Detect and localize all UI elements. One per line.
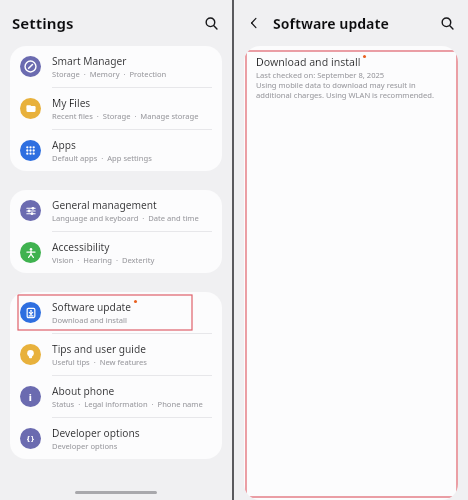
button[interactable]: Apps — [10, 130, 222, 171]
button[interactable]: Search — [434, 10, 460, 36]
button[interactable]: Search — [198, 10, 224, 36]
button[interactable]: My Files — [10, 88, 222, 129]
staticText: Recent files · Storage · Manage storage — [52, 111, 199, 121]
button[interactable]: Tips and user guide — [10, 334, 222, 375]
staticText: General management — [52, 198, 157, 212]
staticText: Tips and user guide — [52, 342, 146, 356]
staticText: i — [29, 391, 32, 403]
staticText: Software update — [52, 300, 132, 314]
staticText: Useful tips · New features — [52, 357, 147, 367]
staticText: My Files — [52, 96, 91, 110]
staticText: About phone — [52, 384, 115, 398]
button[interactable]: General management — [10, 190, 222, 231]
staticText: Using mobile data to download may result… — [256, 80, 416, 90]
staticText: Status · Legal information · Phone name — [52, 399, 203, 409]
staticText: { } — [27, 434, 34, 443]
staticText: Default apps · App settings — [52, 153, 152, 163]
staticText: Vision · Hearing · Dexterity — [52, 255, 155, 265]
staticText: Accessibility — [52, 240, 110, 254]
staticText: Last checked on: September 8, 2025 — [256, 70, 385, 80]
staticText: Download and install — [52, 315, 127, 325]
staticText: Language and keyboard · Date and time — [52, 213, 199, 223]
staticText: Settings — [12, 13, 74, 33]
button[interactable]: Software update — [10, 292, 222, 333]
staticText: Download and install — [256, 55, 361, 69]
button[interactable]: { } — [10, 418, 222, 459]
staticText: additional charges. Using WLAN is recomm… — [256, 90, 435, 100]
button[interactable]: Download and install — [244, 46, 458, 109]
staticText: Software update — [273, 14, 389, 33]
button[interactable]: Smart Manager — [10, 46, 222, 87]
staticText: Developer options — [52, 441, 118, 451]
button[interactable]: i — [10, 376, 222, 417]
staticText: Storage · Memory · Protection — [52, 69, 167, 79]
button[interactable]: Back — [242, 11, 266, 35]
staticText: Smart Manager — [52, 54, 127, 68]
staticText: Apps — [52, 138, 76, 152]
button[interactable]: Accessibility — [10, 232, 222, 273]
staticText: Developer options — [52, 426, 140, 440]
